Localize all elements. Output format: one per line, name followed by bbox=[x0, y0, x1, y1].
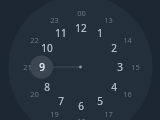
button[interactable]: 22 bbox=[23, 32, 45, 48]
staticText: 2 bbox=[111, 41, 117, 55]
staticText: 8 bbox=[44, 80, 50, 94]
staticText: 19 bbox=[50, 109, 59, 119]
staticText: 23 bbox=[50, 15, 59, 25]
button[interactable]: 19 bbox=[43, 106, 65, 120]
button[interactable]: 1 bbox=[89, 25, 111, 41]
staticText: 10 bbox=[41, 41, 53, 55]
button[interactable]: 4 bbox=[103, 79, 125, 95]
button[interactable]: Hour dial bbox=[9, 0, 153, 115]
button[interactable]: 00 bbox=[70, 5, 92, 21]
staticText: 4 bbox=[111, 80, 117, 94]
staticText: 18 bbox=[77, 116, 86, 120]
button[interactable]: 14 bbox=[116, 32, 138, 48]
button[interactable]: 2 bbox=[103, 40, 125, 56]
button[interactable]: 15 bbox=[124, 59, 146, 75]
button[interactable]: 3 bbox=[109, 59, 131, 75]
button[interactable]: 13 bbox=[97, 12, 119, 28]
staticText: 5 bbox=[97, 94, 103, 108]
staticText: 7 bbox=[58, 94, 64, 108]
button[interactable]: 8 bbox=[36, 79, 58, 95]
button[interactable]: 7 bbox=[50, 93, 72, 109]
staticText: 00 bbox=[77, 8, 86, 18]
staticText: 6 bbox=[78, 99, 84, 113]
staticText: 15 bbox=[131, 62, 140, 72]
staticText: 16 bbox=[123, 89, 132, 99]
button[interactable]: 20 bbox=[23, 86, 45, 102]
staticText: 21 bbox=[23, 62, 32, 72]
button[interactable]: 23 bbox=[43, 12, 65, 28]
button[interactable]: 6 bbox=[70, 98, 92, 114]
button[interactable]: 5 bbox=[89, 93, 111, 109]
staticText: 11 bbox=[55, 26, 67, 40]
button[interactable]: 11 bbox=[50, 25, 72, 41]
button[interactable]: 10 bbox=[36, 40, 58, 56]
staticText: 14 bbox=[123, 35, 132, 45]
button[interactable]: 18 bbox=[70, 113, 92, 120]
staticText: 9 bbox=[39, 60, 45, 74]
staticText: 1 bbox=[97, 26, 103, 40]
staticText: 17 bbox=[104, 109, 113, 119]
staticText: 3 bbox=[117, 60, 123, 74]
staticText: 12 bbox=[75, 21, 87, 35]
button[interactable]: 21 bbox=[16, 59, 38, 75]
staticText: 22 bbox=[30, 35, 39, 45]
staticText: 20 bbox=[30, 89, 39, 99]
staticText: 13 bbox=[104, 15, 113, 25]
button[interactable]: 16 bbox=[116, 86, 138, 102]
button[interactable]: 9 bbox=[31, 59, 53, 75]
button[interactable]: 12 bbox=[70, 20, 92, 36]
button[interactable]: 17 bbox=[97, 106, 119, 120]
